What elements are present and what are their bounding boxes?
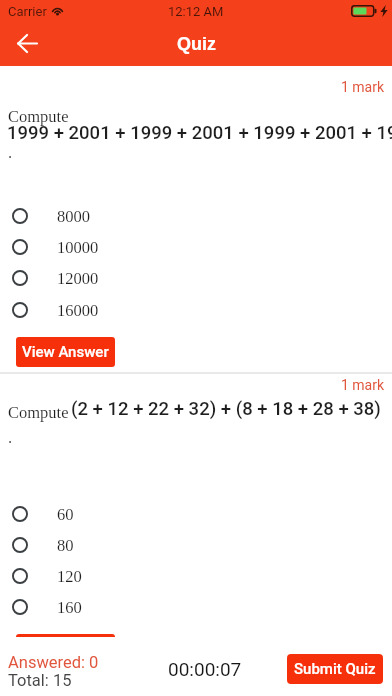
staticText: 12:12 AM bbox=[168, 4, 224, 19]
button[interactable]: 8000 bbox=[0, 200, 392, 231]
staticText: Answered: 0 bbox=[8, 653, 99, 672]
staticText: Carrier bbox=[8, 4, 47, 19]
staticText: 16000 bbox=[57, 301, 99, 319]
button[interactable]: 60 bbox=[0, 498, 392, 529]
staticText: . bbox=[8, 428, 13, 446]
staticText: (2 + 12 + 22 + 32) + (8 + 18 + 28 + 38) bbox=[71, 398, 381, 420]
staticText: 10000 bbox=[57, 238, 99, 256]
staticText: Total: 15 bbox=[8, 671, 72, 690]
staticText: 8000 bbox=[57, 207, 90, 225]
button[interactable]: View Answer bbox=[16, 634, 115, 664]
staticText: Submit Quiz bbox=[294, 660, 376, 678]
staticText: . bbox=[8, 143, 13, 161]
button[interactable]: Submit Quiz bbox=[287, 654, 383, 684]
staticText: 1999 + 2001 + 1999 + 2001 + 1999 + 2001 … bbox=[7, 122, 392, 144]
button[interactable]: 80 bbox=[0, 529, 392, 560]
button[interactable]: 16000 bbox=[0, 294, 392, 325]
staticText: 00:00:07 bbox=[168, 658, 242, 680]
staticText: Compute bbox=[8, 403, 69, 421]
staticText: 1 mark bbox=[0, 377, 384, 393]
staticText: Quiz bbox=[177, 34, 216, 54]
button[interactable]: 160 bbox=[0, 591, 392, 622]
staticText: Compute bbox=[8, 107, 69, 125]
staticText: 12000 bbox=[57, 269, 99, 287]
staticText: 160 bbox=[57, 598, 82, 616]
button[interactable]: 10000 bbox=[0, 231, 392, 262]
staticText: View Answer bbox=[22, 343, 109, 361]
staticText: View Answer bbox=[22, 640, 109, 658]
staticText: 80 bbox=[57, 536, 74, 554]
staticText: 60 bbox=[57, 505, 74, 523]
button[interactable]: Back bbox=[7, 23, 46, 63]
button[interactable]: 120 bbox=[0, 560, 392, 591]
button[interactable]: 12000 bbox=[0, 262, 392, 293]
button[interactable]: View Answer bbox=[16, 337, 115, 367]
staticText: 1 mark bbox=[0, 79, 384, 95]
staticText: 120 bbox=[57, 567, 82, 585]
